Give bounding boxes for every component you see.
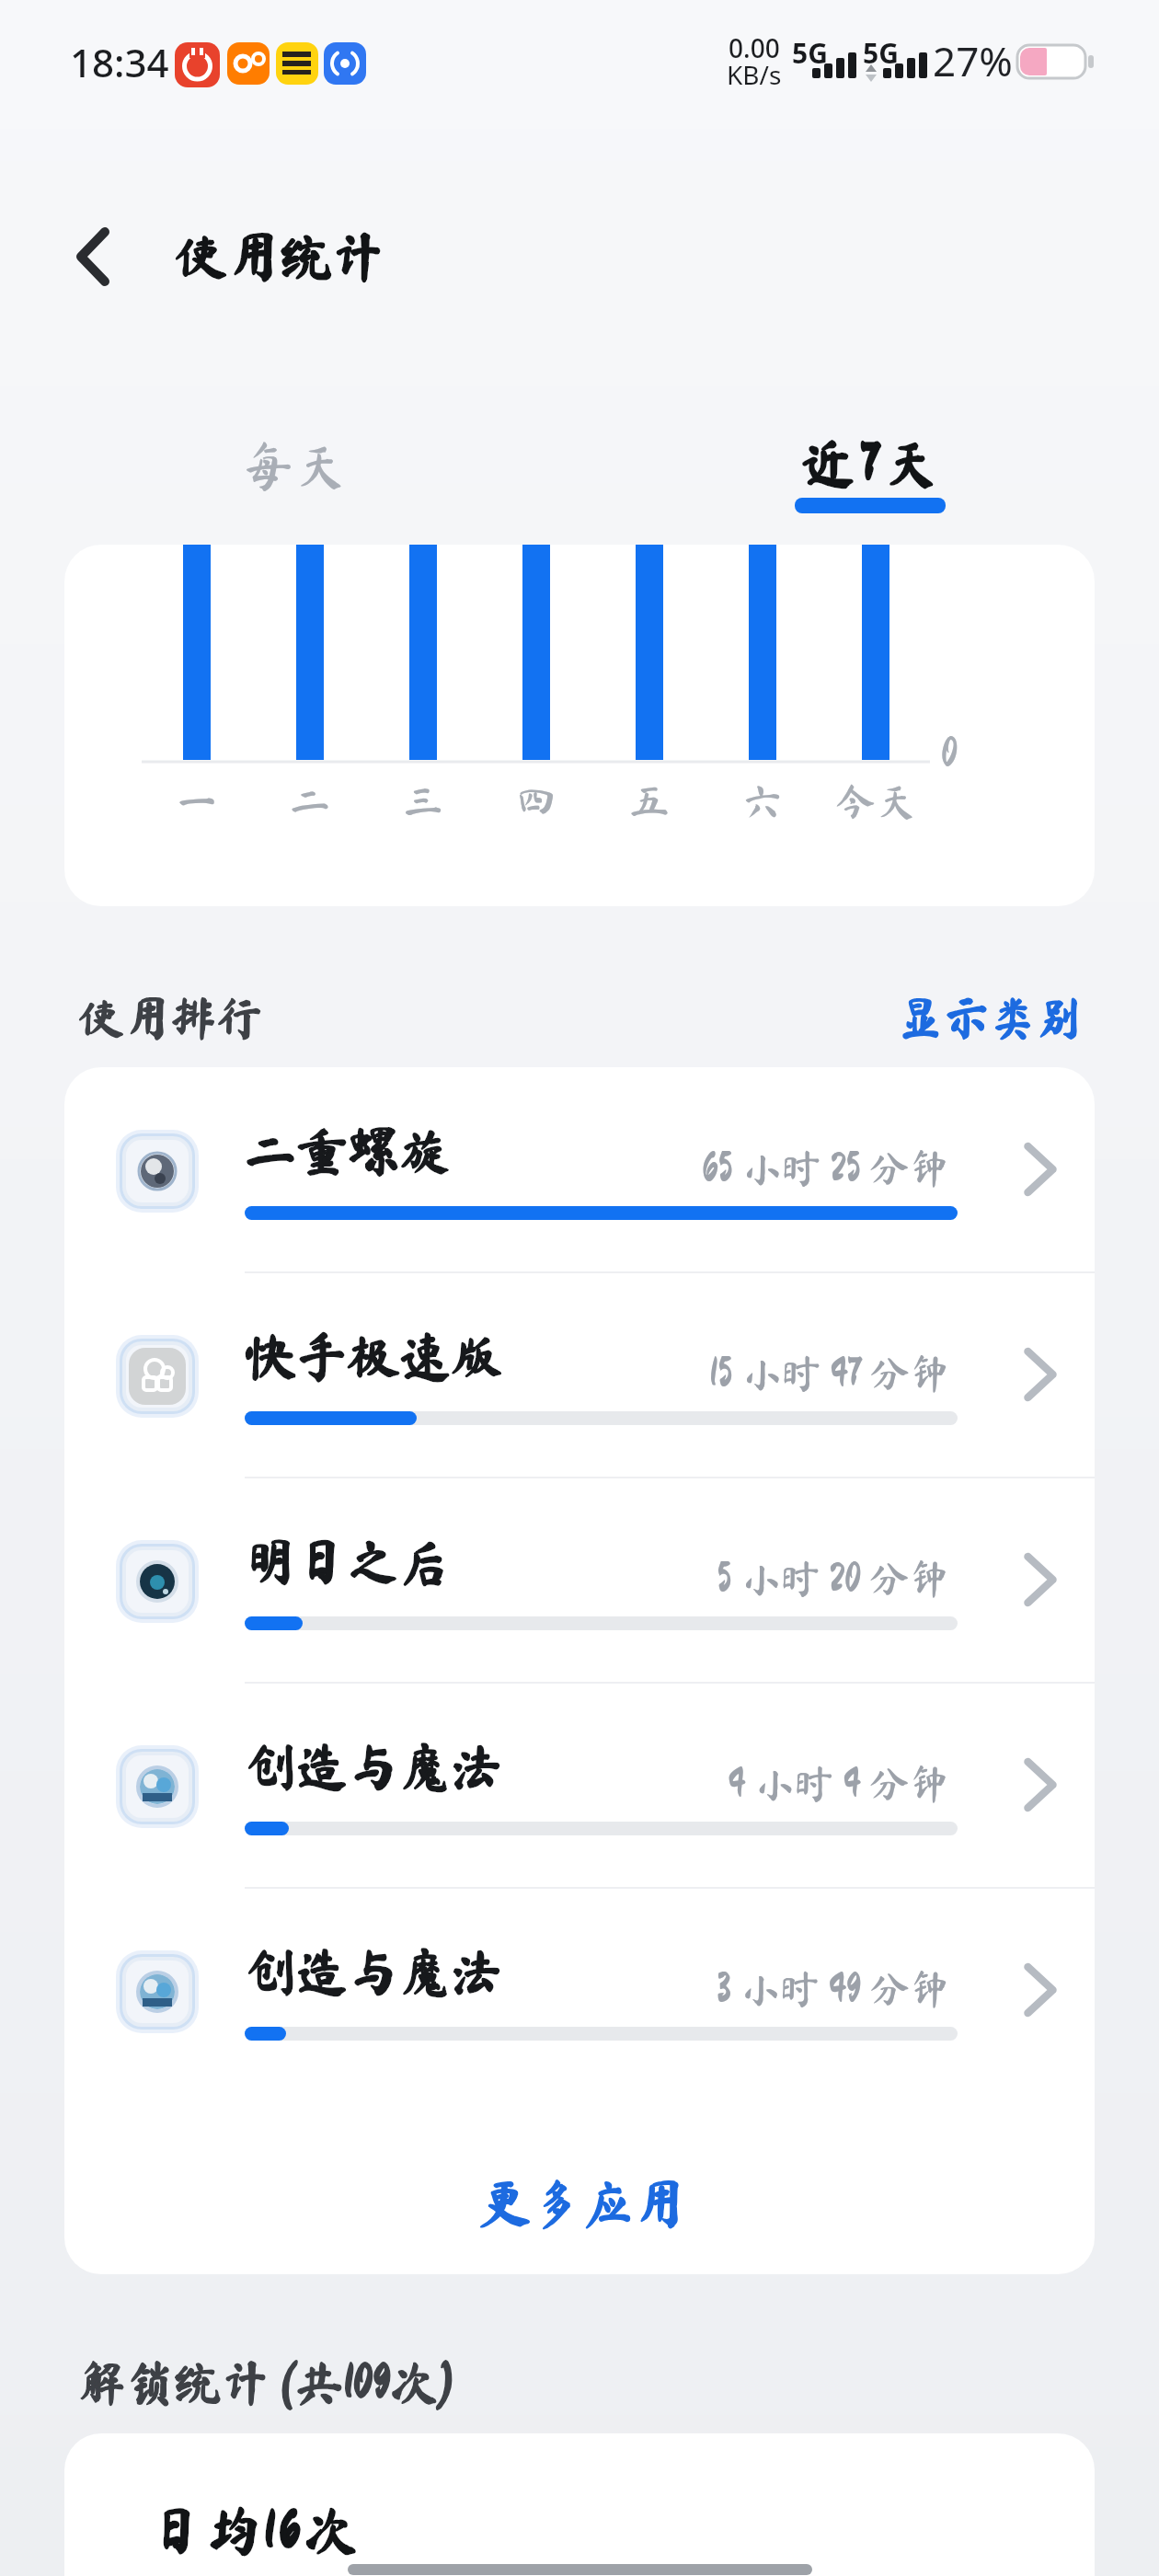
staticText: 5G bbox=[792, 34, 828, 72]
staticText: 3 小时 49 分钟 bbox=[717, 1968, 950, 2008]
staticText: 三 bbox=[403, 780, 443, 821]
staticText: 二重螺旋 bbox=[245, 1125, 451, 1177]
staticText: 二 bbox=[290, 780, 330, 821]
staticText: 65 小时 25 分钟 bbox=[702, 1147, 950, 1188]
staticText: 解锁统计 (共109次) bbox=[78, 2358, 455, 2406]
staticText: 使用排行 bbox=[78, 995, 262, 1041]
staticText: 快手极速版 bbox=[245, 1330, 502, 1382]
staticText: 六 bbox=[742, 780, 783, 821]
staticText: KB/s bbox=[727, 57, 782, 92]
staticText: 日均16次 bbox=[150, 2503, 361, 2557]
staticText: 日均16次 bbox=[150, 2503, 361, 2557]
staticText: 显示类别 bbox=[898, 995, 1082, 1041]
staticText: 0.00 bbox=[729, 30, 780, 65]
staticText: 18:34 bbox=[70, 36, 169, 88]
staticText: 15 小时 47 分钟 bbox=[709, 1352, 950, 1393]
staticText: 快手极速版 bbox=[245, 1330, 502, 1382]
staticText: 27% bbox=[933, 33, 1013, 88]
staticText: 创造与魔法 bbox=[245, 1741, 502, 1792]
staticText: 明日之后 bbox=[245, 1535, 451, 1587]
staticText: 五 bbox=[629, 780, 670, 821]
staticText: 一 bbox=[177, 780, 217, 821]
staticText: 四 bbox=[516, 780, 557, 821]
staticText: 使用排行 bbox=[78, 995, 262, 1041]
staticText: 5G bbox=[863, 34, 899, 72]
staticText: 创造与魔法 bbox=[245, 1946, 502, 1997]
staticText: 使用统计 bbox=[175, 230, 384, 282]
staticText: 更多应用 bbox=[479, 2178, 685, 2229]
staticText: 0 bbox=[941, 732, 958, 773]
staticText: 二重螺旋 bbox=[245, 1125, 451, 1177]
staticText: 创造与魔法 bbox=[245, 1946, 502, 1997]
staticText: 4 小时 4 分钟 bbox=[728, 1763, 950, 1803]
staticText: 5 小时 20 分钟 bbox=[717, 1558, 950, 1598]
staticText: 近7天 bbox=[801, 436, 943, 489]
staticText: 使用统计 bbox=[175, 230, 384, 282]
staticText: 更多应用 bbox=[479, 2178, 685, 2229]
staticText: 近7天 bbox=[801, 436, 943, 489]
staticText: 明日之后 bbox=[245, 1535, 451, 1587]
staticText: 显示类别 bbox=[898, 995, 1082, 1041]
staticText: 每天 bbox=[243, 440, 346, 491]
staticText: 解锁统计 (共109次) bbox=[78, 2358, 455, 2406]
staticText: 创造与魔法 bbox=[245, 1741, 502, 1792]
staticText: 今天 bbox=[835, 780, 916, 821]
